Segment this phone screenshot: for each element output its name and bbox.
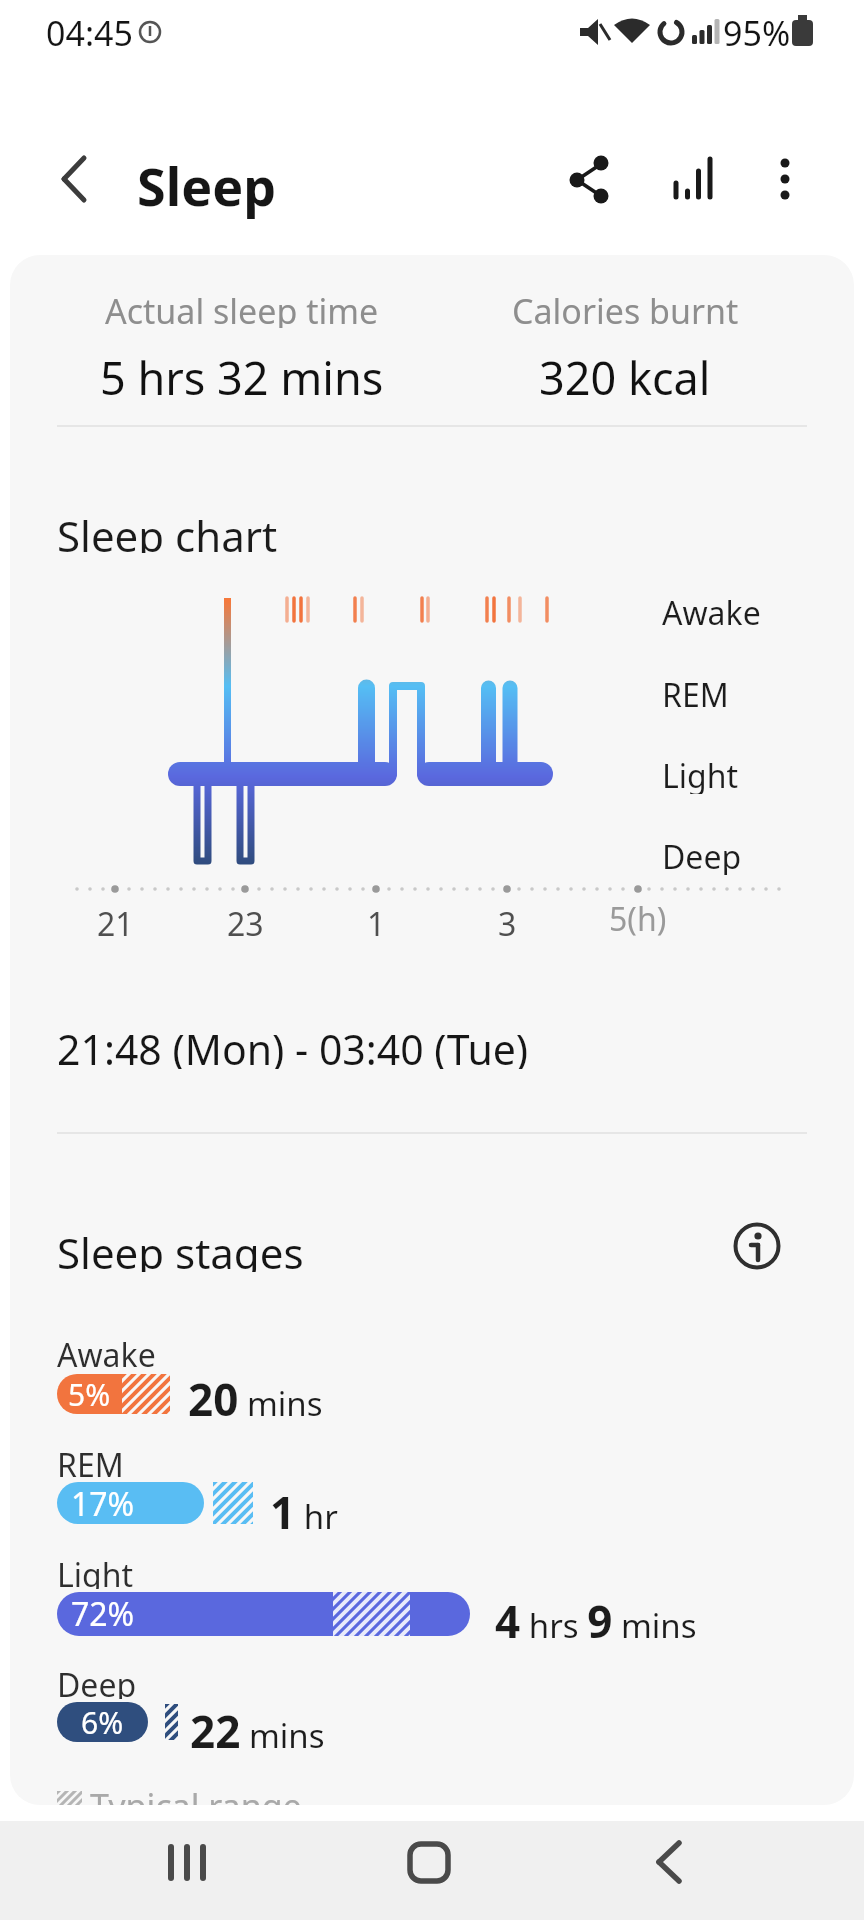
- staticText: Typical range: [90, 1783, 302, 1805]
- staticText: 04:45: [46, 10, 133, 54]
- button[interactable]: [549, 150, 607, 208]
- staticText: 3: [498, 902, 517, 942]
- staticText: Calories burnt: [512, 288, 739, 328]
- staticText: Awake: [57, 1333, 156, 1369]
- staticText: 21: [97, 902, 134, 942]
- staticText: 5(h): [609, 897, 667, 937]
- button[interactable]: [756, 150, 814, 208]
- staticText: Deep: [57, 1663, 137, 1699]
- staticText: 5%: [68, 1374, 111, 1414]
- staticText: 1 hr: [270, 1482, 338, 1532]
- button[interactable]: [735, 1224, 779, 1268]
- button[interactable]: [664, 150, 722, 208]
- staticText: Sleep stages: [57, 1224, 304, 1272]
- staticText: Sleep chart: [57, 507, 278, 553]
- button[interactable]: [629, 1830, 709, 1894]
- staticText: 5 hrs 32 mins: [100, 347, 384, 399]
- staticText: REM: [57, 1443, 124, 1479]
- button[interactable]: [389, 1830, 469, 1894]
- staticText: 6%: [81, 1702, 124, 1742]
- staticText: 72%: [71, 1592, 135, 1636]
- staticText: 23: [227, 902, 264, 942]
- staticText: 22 mins: [190, 1701, 325, 1751]
- staticText: 4 hrs 9 mins: [495, 1591, 697, 1641]
- staticText: 1: [367, 902, 386, 942]
- staticText: 21:48 (Mon) - 03:40 (Tue): [57, 1021, 529, 1069]
- staticText: Light: [662, 754, 739, 794]
- staticText: 320 kcal: [539, 347, 711, 399]
- staticText: Actual sleep time: [105, 288, 379, 328]
- button[interactable]: [137, 1830, 237, 1894]
- staticText: 95%: [723, 10, 791, 54]
- staticText: Awake: [662, 591, 761, 631]
- staticText: 20 mins: [188, 1369, 323, 1419]
- button[interactable]: [40, 145, 108, 213]
- staticText: 17%: [71, 1482, 135, 1524]
- staticText: Sleep: [137, 150, 277, 220]
- staticText: Deep: [662, 835, 742, 875]
- staticText: Light: [57, 1553, 134, 1589]
- staticText: REM: [662, 673, 729, 713]
